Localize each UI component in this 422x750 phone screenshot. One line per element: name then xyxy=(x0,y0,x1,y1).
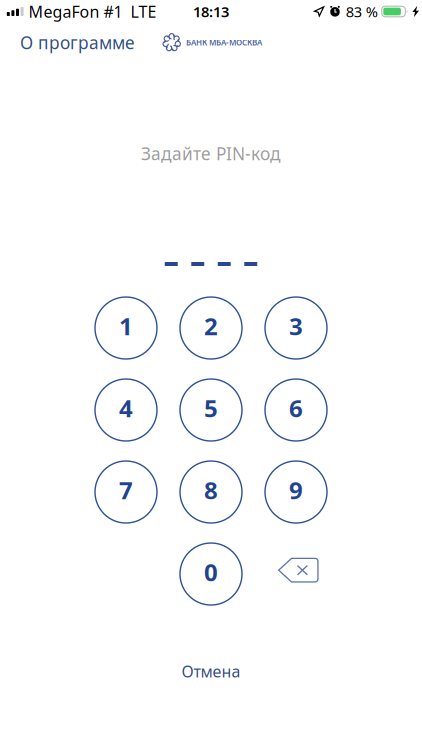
staticText: 4 xyxy=(119,392,133,424)
button[interactable]: О программе xyxy=(20,27,135,58)
button[interactable]: 8 xyxy=(180,461,242,523)
button[interactable]: 2 xyxy=(180,297,242,359)
staticText: 8 xyxy=(204,474,218,506)
staticText: Задайте PIN-код xyxy=(141,142,281,165)
button[interactable]: 5 xyxy=(180,379,242,441)
staticText: 1 xyxy=(119,310,133,342)
staticText: MegaFon #1 xyxy=(28,1,122,22)
staticText: 9 xyxy=(289,474,303,506)
button[interactable]: 3 xyxy=(265,297,327,359)
button[interactable]: 1 xyxy=(95,297,157,359)
staticText: LTE xyxy=(130,1,156,22)
staticText: 0 xyxy=(204,556,218,588)
button[interactable]: 6 xyxy=(265,379,327,441)
staticText: 5 xyxy=(204,392,218,424)
staticText: 2 xyxy=(204,310,218,342)
button[interactable]: Delete xyxy=(265,543,327,605)
button[interactable]: Отмена xyxy=(165,653,256,690)
staticText: БАНК МБА-МОСКВА xyxy=(186,37,262,48)
staticText: О программе xyxy=(20,31,135,54)
button[interactable]: 0 xyxy=(180,543,242,605)
button[interactable]: 4 xyxy=(95,379,157,441)
staticText: 7 xyxy=(119,474,133,506)
staticText: 6 xyxy=(289,392,303,424)
staticText: 18:13 xyxy=(193,2,229,21)
button[interactable]: 9 xyxy=(265,461,327,523)
staticText: Отмена xyxy=(181,661,240,682)
staticText: 83 % xyxy=(346,2,378,21)
staticText: 3 xyxy=(289,310,303,342)
button[interactable]: 7 xyxy=(95,461,157,523)
